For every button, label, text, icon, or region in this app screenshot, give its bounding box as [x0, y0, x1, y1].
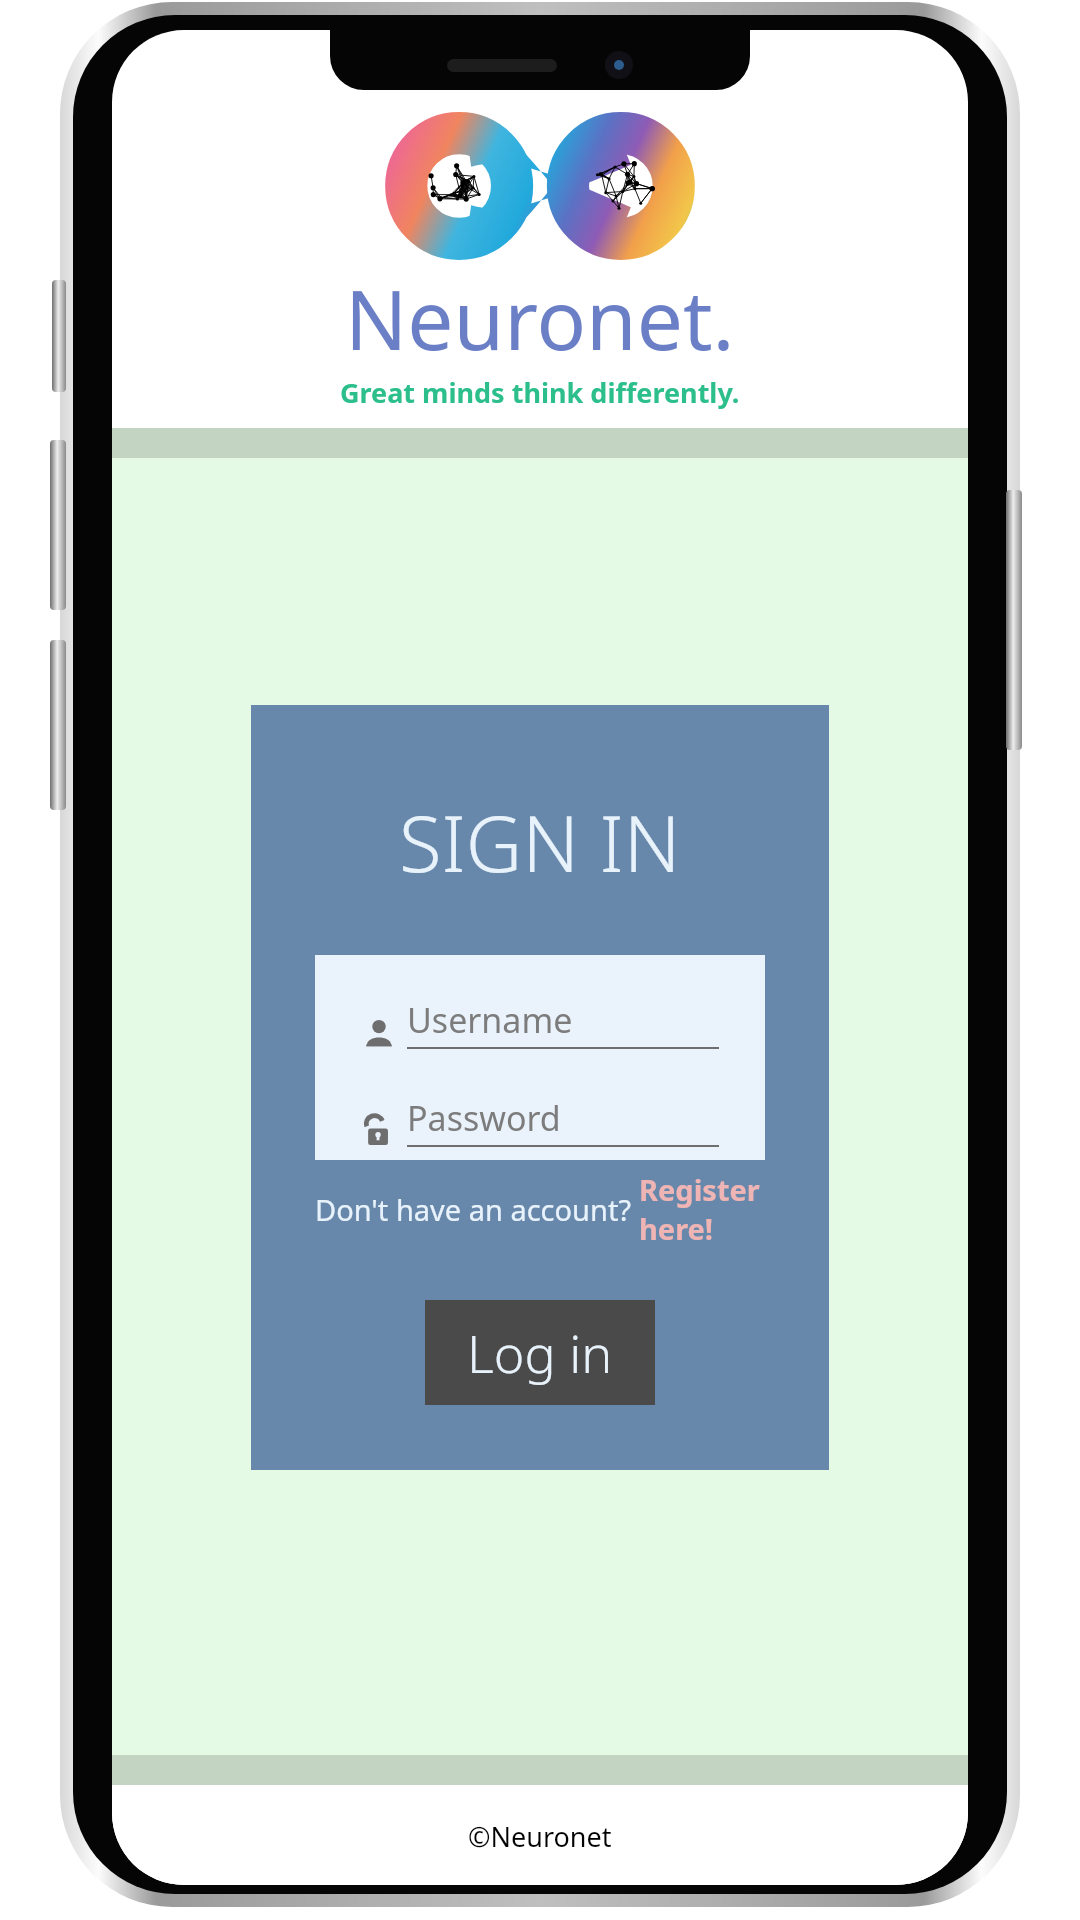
button[interactable]: Username [363, 997, 719, 1049]
other: Password [363, 1115, 395, 1147]
staticText: Password [407, 1095, 561, 1141]
staticText: Log in [467, 1317, 613, 1388]
staticText: SIGN IN [399, 789, 681, 895]
staticText: Great minds think differently. [340, 374, 740, 411]
button[interactable]: Log in [425, 1300, 655, 1405]
staticText: Username [407, 997, 573, 1043]
staticText: Don't have an account? [315, 1190, 639, 1229]
staticText: Register here! [639, 1170, 765, 1248]
button[interactable]: Password [363, 1095, 719, 1147]
other: Username [363, 1017, 395, 1049]
staticText: Neuronet. [345, 262, 735, 374]
staticText: ©Neuronet [468, 1818, 612, 1855]
button[interactable]: Register here! [639, 1170, 765, 1248]
